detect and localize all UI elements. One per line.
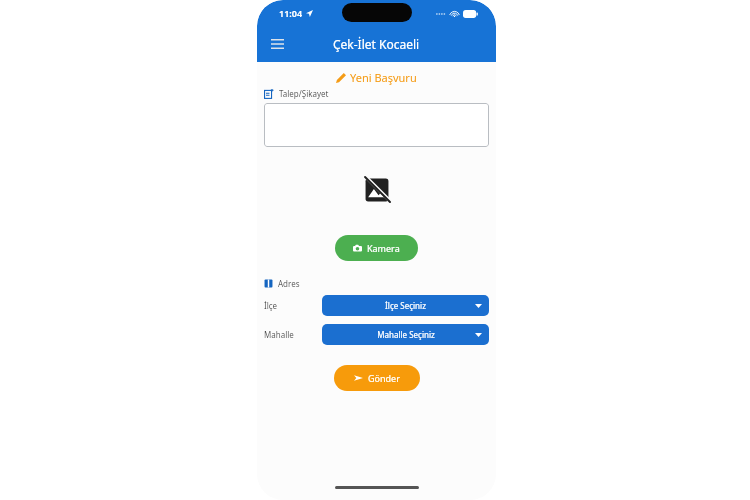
staticText: Mahalle Seçiniz <box>377 329 435 340</box>
button[interactable]: Gönder <box>334 365 420 391</box>
button[interactable] <box>264 103 489 147</box>
staticText: Çek-İlet Kocaeli <box>333 36 420 52</box>
button[interactable]: İlçe Seçiniz <box>322 295 489 316</box>
staticText: Mahalle <box>264 329 294 340</box>
staticText: Yeni Başvuru <box>350 70 417 85</box>
button[interactable]: Kamera <box>335 235 418 261</box>
staticText: Talep/Şikayet <box>279 88 329 99</box>
staticText: İlçe <box>264 300 278 311</box>
staticText: Kamera <box>367 242 400 254</box>
staticText: İlçe Seçiniz <box>385 300 426 311</box>
staticText: 11:04 <box>279 7 303 19</box>
button[interactable]: Menu <box>263 30 291 58</box>
button[interactable]: Mahalle Seçiniz <box>322 324 489 345</box>
staticText: Adres <box>278 278 300 289</box>
staticText: Gönder <box>368 372 400 384</box>
